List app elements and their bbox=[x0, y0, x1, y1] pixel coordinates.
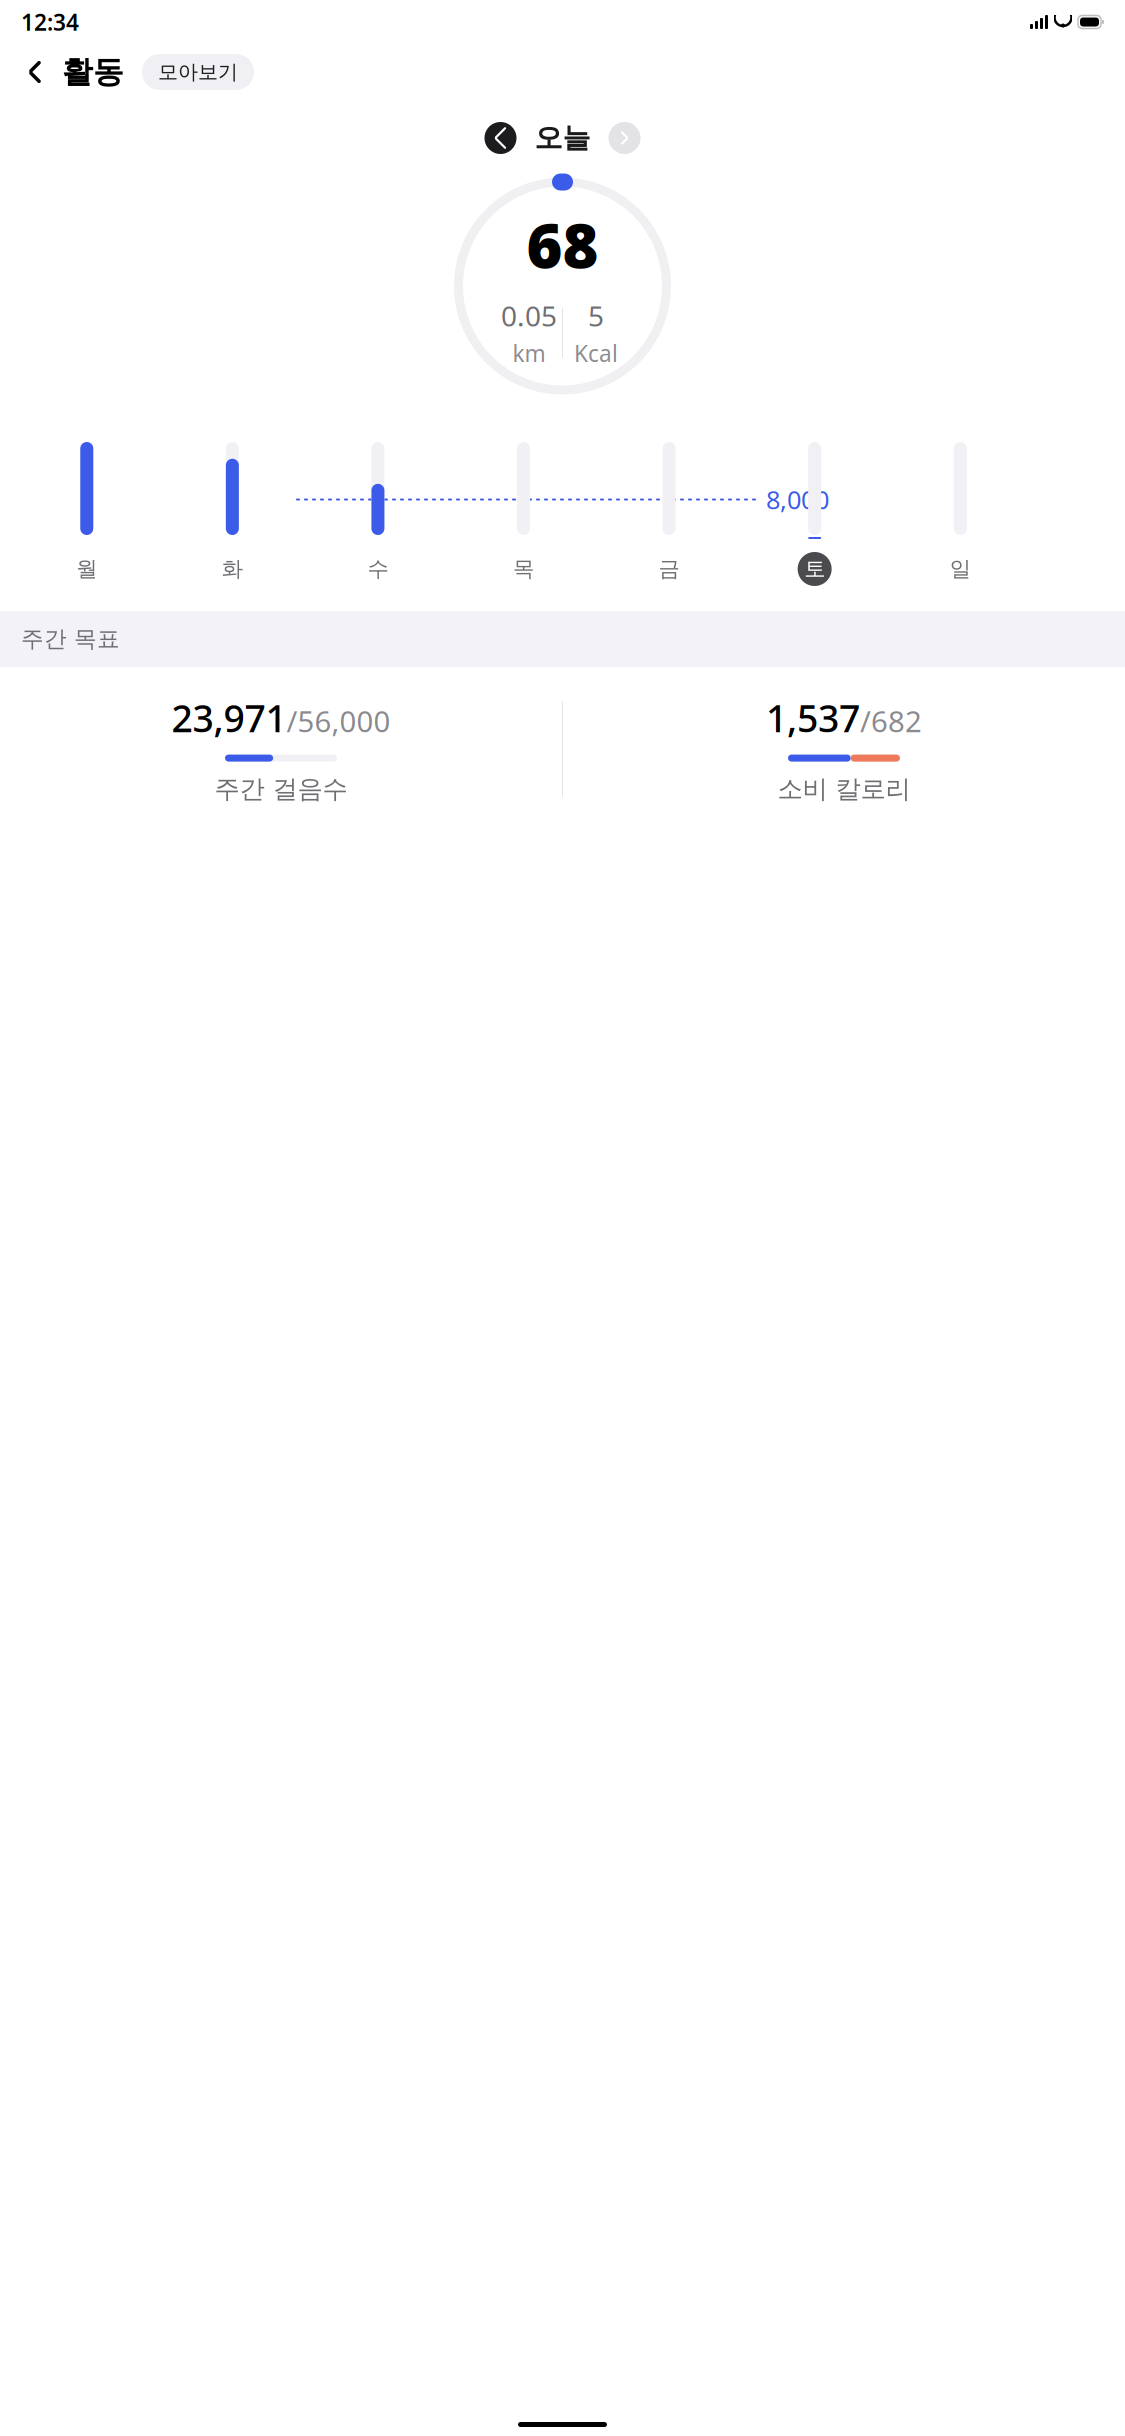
staticText: 활동 bbox=[62, 53, 124, 91]
staticText: 목 bbox=[513, 556, 534, 582]
staticText: 12:34 bbox=[21, 7, 79, 37]
button[interactable]: 다음 날짜 bbox=[604, 118, 644, 158]
staticText: 소비 칼로리 bbox=[777, 774, 910, 805]
staticText: km bbox=[512, 338, 545, 368]
staticText: 8,000 bbox=[766, 483, 829, 516]
staticText: 오늘 bbox=[534, 121, 590, 155]
staticText: 주간 걸음수 bbox=[214, 774, 347, 805]
staticText: 5 bbox=[588, 297, 604, 334]
staticText: 월 bbox=[76, 556, 97, 582]
staticText: /682 bbox=[860, 701, 922, 740]
staticText: 23,971 bbox=[171, 693, 286, 743]
staticText: /56,000 bbox=[286, 701, 390, 740]
button[interactable]: 모아보기 bbox=[142, 54, 254, 90]
staticText: Kcal bbox=[574, 338, 618, 368]
staticText: 모아보기 bbox=[158, 60, 238, 84]
button[interactable]: 이전 날짜 bbox=[480, 118, 520, 158]
staticText: 일 bbox=[950, 556, 971, 582]
staticText: 1,537 bbox=[766, 693, 860, 743]
staticText: 수 bbox=[367, 556, 388, 582]
button[interactable]: 뒤로 bbox=[18, 52, 52, 92]
staticText: 주간 목표 bbox=[21, 625, 120, 653]
staticText: 토 bbox=[804, 556, 825, 582]
staticText: 68 bbox=[526, 204, 598, 285]
staticText: 0.05 bbox=[501, 297, 557, 334]
staticText: 금 bbox=[659, 556, 680, 582]
staticText: 화 bbox=[222, 556, 243, 582]
